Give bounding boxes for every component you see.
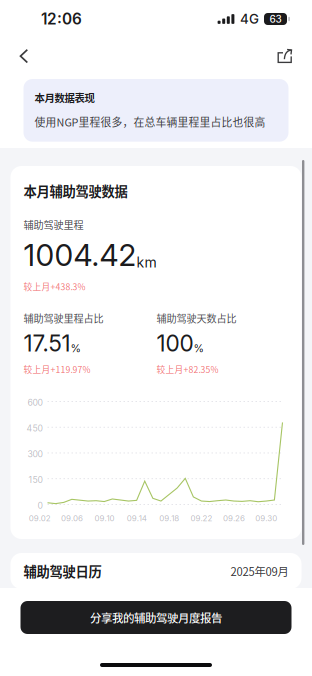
staticText: 09.02 xyxy=(29,513,51,523)
staticText: 使用NGP里程很多，在总车辆里程里占比也很高 xyxy=(34,114,265,130)
staticText: 辅助驾驶里程 xyxy=(23,217,83,232)
staticText: 2025年09月 xyxy=(230,563,288,579)
staticText: 600 xyxy=(27,397,42,408)
staticText: 本月辅助驾驶数据 xyxy=(23,181,127,200)
staticText: 分享我的辅助驾驶月度报告 xyxy=(90,609,222,626)
staticText: km xyxy=(136,254,156,271)
staticText: 09.14 xyxy=(127,513,147,523)
staticText: 300 xyxy=(27,449,42,459)
staticText: 辅助驾驶里程占比 xyxy=(23,311,103,325)
staticText: 09.30 xyxy=(255,513,277,523)
staticText: 1004.42 xyxy=(23,237,136,273)
staticText: 09.26 xyxy=(223,513,245,523)
staticText: 本月数据表现 xyxy=(34,90,94,105)
staticText: 较上月+438.3% xyxy=(23,280,85,293)
staticText: % xyxy=(193,342,203,355)
button[interactable]: Back xyxy=(4,38,44,74)
staticText: 12:06 xyxy=(41,10,82,28)
staticText: 150 xyxy=(28,475,42,485)
staticText: 较上月+119.97% xyxy=(23,363,90,375)
staticText: 100 xyxy=(156,329,193,357)
staticText: 辅助驾驶天数占比 xyxy=(156,311,236,325)
staticText: % xyxy=(70,342,80,355)
staticText: 辅助驾驶日历 xyxy=(23,561,101,581)
staticText: 17.51 xyxy=(23,329,70,357)
button[interactable]: Share xyxy=(265,38,305,74)
staticText: 09.18 xyxy=(159,513,179,523)
staticText: 09.22 xyxy=(191,513,213,523)
staticText: 63 xyxy=(269,13,281,25)
staticText: 09.10 xyxy=(94,513,114,523)
staticText: 0 xyxy=(37,500,42,511)
staticText: 较上月+82.35% xyxy=(156,363,218,375)
staticText: 09.06 xyxy=(61,513,83,523)
staticText: 4G xyxy=(240,11,259,27)
button[interactable]: 分享我的辅助驾驶月度报告 xyxy=(20,601,291,634)
staticText: 450 xyxy=(26,423,42,434)
